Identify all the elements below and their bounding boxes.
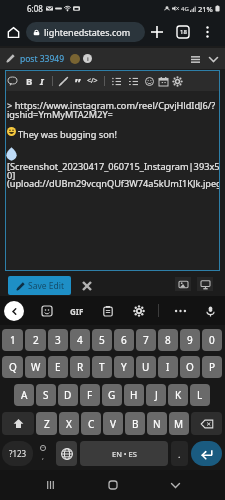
button[interactable]: H bbox=[124, 384, 144, 406]
button[interactable]: ?123 bbox=[2, 441, 33, 466]
button[interactable]: S bbox=[36, 384, 56, 406]
button[interactable]: G bbox=[102, 384, 122, 406]
button[interactable]: D bbox=[58, 384, 78, 406]
button[interactable]: 2 bbox=[25, 329, 46, 351]
staticText: L bbox=[197, 388, 203, 402]
button[interactable]: R bbox=[70, 356, 90, 378]
button[interactable]: Clipboard bbox=[99, 302, 117, 320]
button[interactable]: L bbox=[190, 384, 210, 406]
button[interactable]: Back bbox=[162, 472, 188, 498]
button[interactable] bbox=[156, 74, 170, 88]
button[interactable]: 3 bbox=[48, 329, 68, 351]
button[interactable] bbox=[142, 74, 156, 88]
button[interactable]: Back bbox=[4, 301, 24, 321]
button[interactable]: Menu bbox=[186, 50, 204, 68]
button[interactable] bbox=[170, 74, 184, 88]
staticText: J bbox=[155, 388, 158, 402]
staticText: [Screenshot_20230417_060715_Instagram|39… bbox=[7, 160, 220, 173]
button[interactable]: Recent apps bbox=[37, 472, 63, 498]
button[interactable]: F bbox=[80, 384, 100, 406]
staticText: 21% bbox=[198, 4, 213, 14]
button[interactable] bbox=[56, 74, 70, 88]
staticText: I bbox=[40, 75, 44, 88]
button[interactable]: V bbox=[103, 412, 123, 435]
staticText: B bbox=[132, 417, 139, 431]
button[interactable]: Enter bbox=[191, 441, 222, 466]
button[interactable]: ” bbox=[71, 74, 85, 88]
button[interactable]: Emoji bbox=[34, 441, 51, 466]
staticText: They was bugging son! bbox=[18, 128, 220, 141]
button[interactable]: B bbox=[125, 412, 145, 435]
button[interactable]: 4 bbox=[70, 329, 90, 351]
button[interactable]: Backspace bbox=[191, 412, 222, 435]
button[interactable]: Cancel bbox=[79, 278, 94, 293]
button[interactable]: 8 bbox=[158, 329, 178, 351]
button[interactable] bbox=[5, 74, 19, 88]
button[interactable] bbox=[126, 74, 140, 88]
button[interactable]: 1 bbox=[2, 329, 23, 351]
staticText: H bbox=[130, 388, 138, 402]
button[interactable]: Collapse bbox=[204, 50, 222, 68]
button[interactable]: Home bbox=[3, 22, 23, 42]
staticText: . bbox=[178, 448, 181, 460]
button[interactable]: N bbox=[147, 412, 167, 435]
button[interactable]: More options bbox=[171, 302, 189, 320]
button[interactable]: GIF bbox=[68, 302, 86, 320]
button[interactable]: J bbox=[146, 384, 166, 406]
button[interactable]: Insert image bbox=[175, 277, 191, 291]
button[interactable]: W bbox=[25, 356, 46, 378]
button[interactable]: Shift bbox=[2, 412, 34, 435]
staticText: 5 bbox=[99, 333, 105, 347]
button[interactable]: A bbox=[14, 384, 34, 406]
button[interactable]: Keyboard settings bbox=[130, 302, 148, 320]
button[interactable]: EN • ES bbox=[80, 441, 168, 466]
staticText: > https://www.instagram.com/reel/CpvjHld… bbox=[7, 99, 220, 112]
staticText: D bbox=[64, 388, 72, 402]
staticText: 7 bbox=[143, 333, 149, 347]
staticText: G bbox=[108, 388, 116, 402]
button[interactable]: I bbox=[35, 74, 49, 88]
staticText: 4 bbox=[77, 333, 83, 347]
button[interactable]: 6 bbox=[114, 329, 134, 351]
button[interactable]: </> bbox=[85, 74, 99, 88]
button[interactable]: Q bbox=[2, 356, 23, 378]
button[interactable]: Open tabs bbox=[172, 21, 194, 43]
button[interactable]: I bbox=[158, 356, 178, 378]
button[interactable]: Preview bbox=[197, 277, 213, 291]
button[interactable]: E bbox=[48, 356, 68, 378]
staticText: 3 bbox=[55, 333, 61, 347]
staticText: EN • ES bbox=[112, 449, 137, 459]
button[interactable]: Change language bbox=[56, 441, 77, 466]
button[interactable]: Save Edit bbox=[8, 276, 71, 295]
button[interactable]: X bbox=[59, 412, 79, 435]
staticText: E bbox=[55, 360, 61, 374]
button[interactable]: P bbox=[202, 356, 222, 378]
button[interactable]: New tab bbox=[146, 21, 168, 43]
staticText: igshid=YmMyMTA2M2Y= bbox=[7, 108, 220, 121]
button[interactable]: Y bbox=[114, 356, 134, 378]
button[interactable]: C bbox=[81, 412, 101, 435]
button[interactable]: O bbox=[180, 356, 200, 378]
button[interactable]: . bbox=[171, 441, 188, 466]
button[interactable]: K bbox=[168, 384, 188, 406]
button[interactable]: 0 bbox=[202, 329, 222, 351]
staticText: 6:08 bbox=[27, 3, 43, 14]
button[interactable]: More options bbox=[196, 21, 218, 43]
button[interactable]: 9 bbox=[180, 329, 200, 351]
button[interactable]: lightenedstates.com bbox=[26, 22, 145, 42]
button[interactable]: Voice input bbox=[201, 302, 219, 320]
button[interactable]: 7 bbox=[136, 329, 156, 351]
button[interactable]: M bbox=[169, 412, 189, 435]
button[interactable]: 5 bbox=[92, 329, 112, 351]
button[interactable]: Home bbox=[100, 472, 126, 498]
staticText: Y bbox=[121, 360, 127, 374]
staticText: ?123 bbox=[9, 448, 27, 459]
button[interactable]: B bbox=[22, 74, 36, 88]
button[interactable]: U bbox=[136, 356, 156, 378]
button[interactable]: Stickers bbox=[38, 302, 56, 320]
button[interactable] bbox=[109, 74, 123, 88]
button[interactable]: Z bbox=[36, 412, 57, 435]
staticText: I bbox=[166, 360, 170, 374]
staticText: M bbox=[174, 417, 184, 431]
button[interactable]: T bbox=[92, 356, 112, 378]
